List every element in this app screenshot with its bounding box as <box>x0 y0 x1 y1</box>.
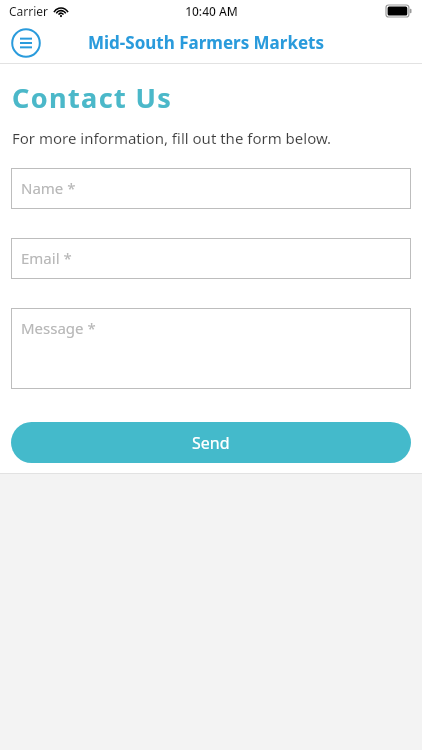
button[interactable]: Email * <box>11 238 411 279</box>
staticText: Mid-South Farmers Markets <box>88 31 324 54</box>
staticText: Send <box>192 432 230 454</box>
button[interactable]: Message * <box>11 308 411 389</box>
button[interactable]: Send <box>11 422 411 463</box>
staticText: Contact Us <box>12 79 173 116</box>
button[interactable]: Name * <box>11 168 411 209</box>
staticText: Message * <box>21 318 96 338</box>
staticText: 10:40 AM <box>185 3 238 19</box>
staticText: Email * <box>21 248 72 268</box>
button[interactable]: Open navigation menu <box>11 28 41 58</box>
staticText: Carrier <box>9 3 49 19</box>
staticText: Name * <box>21 178 76 198</box>
staticText: For more information, fill out the form … <box>12 128 332 148</box>
